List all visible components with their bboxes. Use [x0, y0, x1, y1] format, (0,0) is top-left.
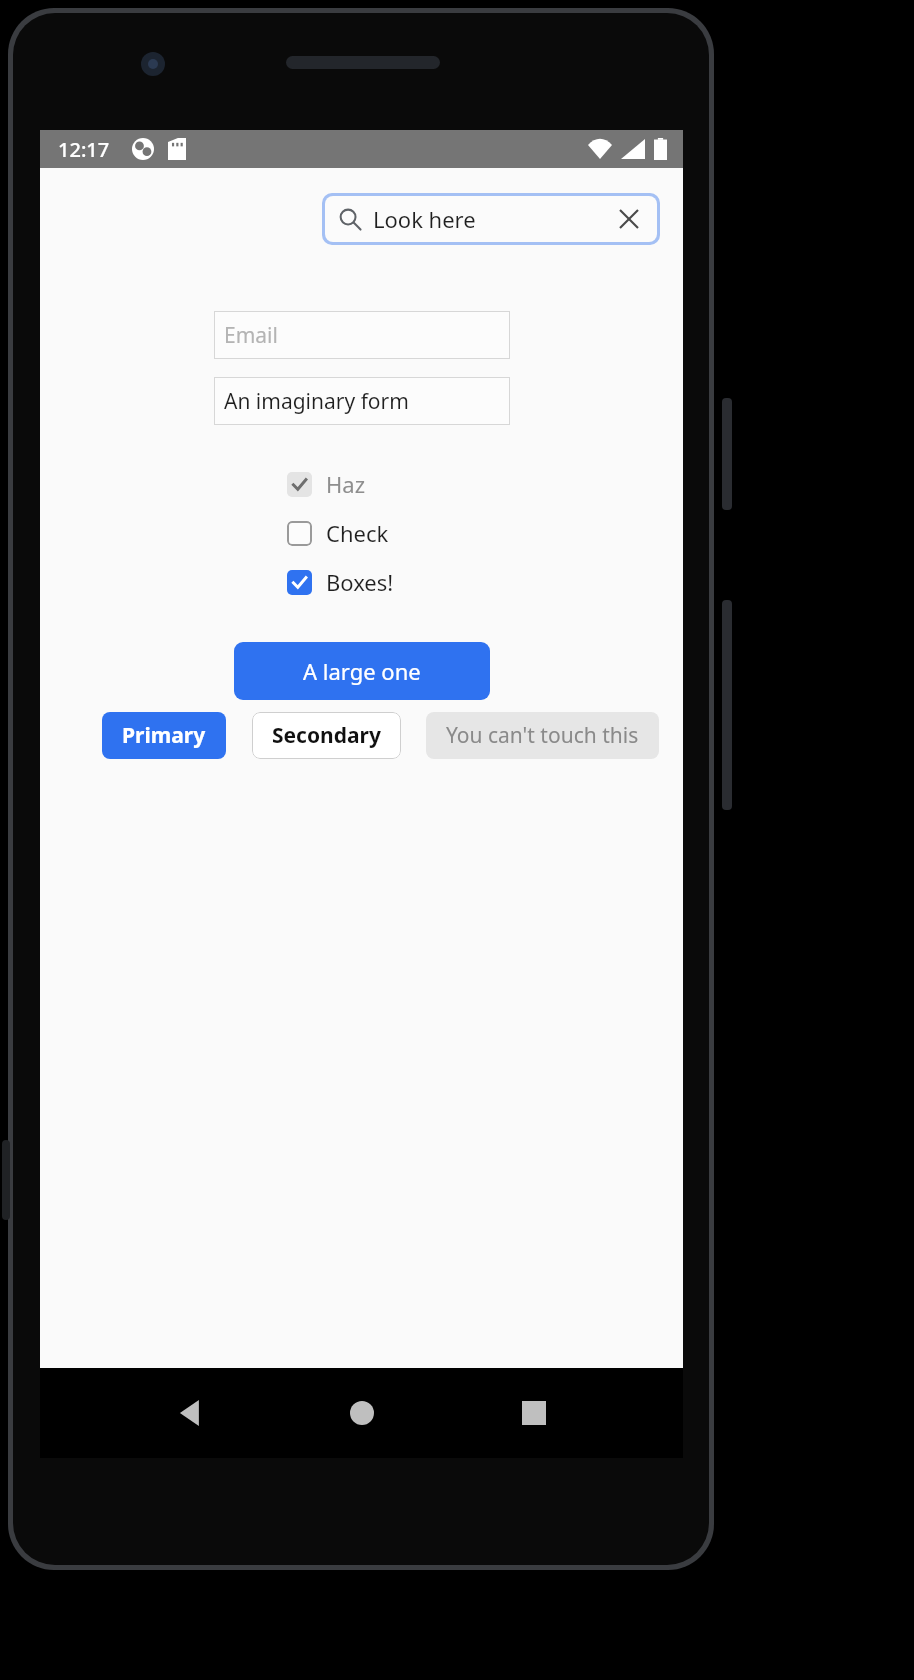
- button[interactable]: Check: [287, 518, 437, 548]
- staticText: Primary: [122, 721, 206, 750]
- staticText: Haz: [326, 469, 365, 499]
- button[interactable]: Home: [339, 1390, 385, 1436]
- staticText: 12:17: [58, 136, 110, 163]
- staticText: Check: [326, 518, 389, 548]
- button[interactable]: Haz: [287, 469, 437, 499]
- button[interactable]: Secondary: [252, 712, 401, 759]
- button[interactable]: Clear search: [614, 204, 644, 234]
- staticText: You can't touch this: [446, 721, 639, 750]
- staticText: A large one: [303, 656, 421, 686]
- button[interactable]: Primary: [102, 712, 226, 759]
- staticText: Look here: [373, 204, 614, 234]
- button[interactable]: Look here: [325, 196, 657, 242]
- button[interactable]: Email: [214, 311, 510, 359]
- button[interactable]: Back: [166, 1390, 212, 1436]
- button[interactable]: Boxes!: [287, 567, 437, 597]
- button[interactable]: A large one: [234, 642, 490, 700]
- staticText: Boxes!: [326, 567, 394, 597]
- staticText: Email: [224, 321, 278, 350]
- button[interactable]: Recent apps: [511, 1390, 557, 1436]
- button[interactable]: An imaginary form: [214, 377, 510, 425]
- staticText: Secondary: [272, 721, 381, 750]
- staticText: An imaginary form: [224, 387, 409, 416]
